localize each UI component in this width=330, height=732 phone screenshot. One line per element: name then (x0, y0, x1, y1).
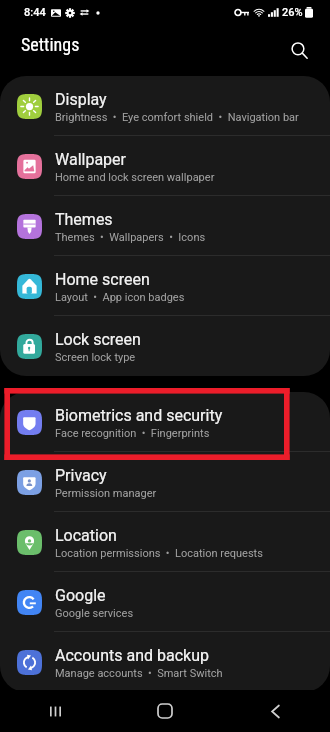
staticText: Privacy (55, 466, 107, 485)
button[interactable]: Home screen (0, 256, 330, 316)
staticText: Wallpaper (55, 150, 126, 169)
staticText: 8:44 (24, 6, 46, 19)
staticText: Themes (55, 210, 113, 229)
staticText: Home and lock screen wallpaper (55, 171, 215, 184)
staticText: Google (55, 586, 106, 605)
staticText: Brightness • Eye comfort shield • Naviga… (55, 111, 299, 124)
button[interactable]: Biometrics and security (0, 392, 330, 452)
staticText: Lock screen (55, 330, 141, 349)
staticText: Accounts and backup (55, 646, 209, 665)
staticText: Settings (21, 34, 80, 55)
staticText: 26% (282, 6, 303, 19)
staticText: Face recognition • Fingerprints (55, 427, 210, 440)
staticText: Permission manager (55, 487, 157, 500)
button[interactable]: Accounts and backup (0, 632, 330, 692)
button[interactable]: Home (110, 690, 220, 732)
staticText: Screen lock type (55, 351, 136, 364)
staticText: Layout • App icon badges (55, 291, 185, 304)
staticText: Manage accounts • Smart Switch (55, 667, 223, 680)
button[interactable]: Themes (0, 196, 330, 256)
button[interactable]: Display (0, 76, 330, 136)
button[interactable]: Privacy (0, 452, 330, 512)
staticText: Google services (55, 607, 134, 620)
staticText: Biometrics and security (55, 406, 223, 425)
button[interactable]: Recents (0, 690, 110, 732)
button[interactable]: Google (0, 572, 330, 632)
button[interactable]: Back (220, 690, 330, 732)
staticText: Location (55, 526, 117, 545)
staticText: Themes • Wallpapers • Icons (55, 231, 206, 244)
button[interactable]: Wallpaper (0, 136, 330, 196)
staticText: Home screen (55, 270, 150, 289)
button[interactable]: Lock screen (0, 316, 330, 376)
staticText: Display (55, 90, 107, 109)
button[interactable]: Location (0, 512, 330, 572)
staticText: Location permissions • Location requests (55, 547, 263, 560)
button[interactable]: Search (282, 33, 316, 67)
